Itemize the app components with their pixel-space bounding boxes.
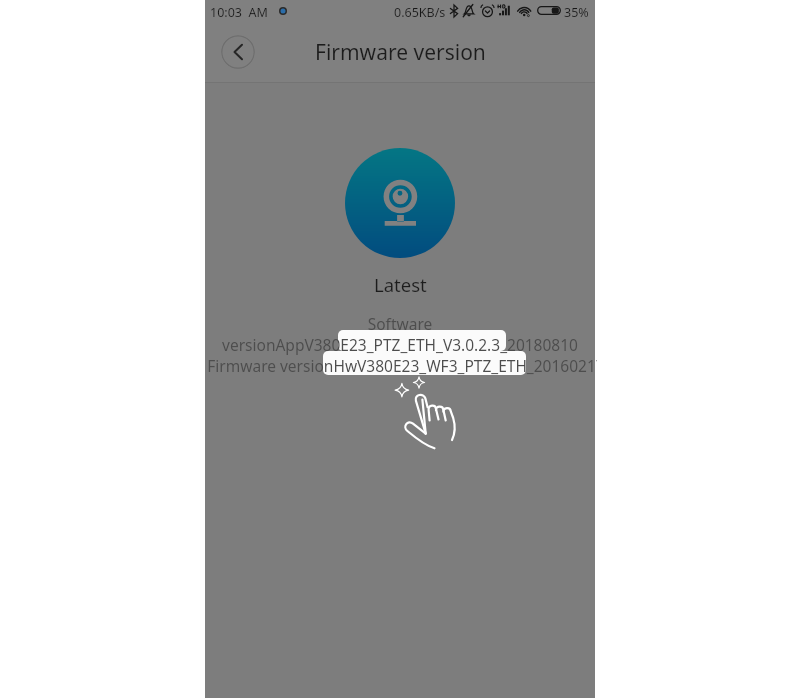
staticText: Firmware versionHwV380E23_WF3_PTZ_ETH_20… [207,355,597,376]
staticText: 10:03 AM [210,4,268,21]
other: Tap gesture [395,377,467,457]
staticText: Firmware version [315,38,486,67]
button[interactable]: Back [221,35,255,69]
staticText: Software versionAppV380E23_PTZ_ETH_V3.0.… [205,313,595,355]
staticText: 0.65KB/s [394,4,446,21]
staticText: 35% [564,4,589,21]
staticText: Latest [374,272,427,297]
